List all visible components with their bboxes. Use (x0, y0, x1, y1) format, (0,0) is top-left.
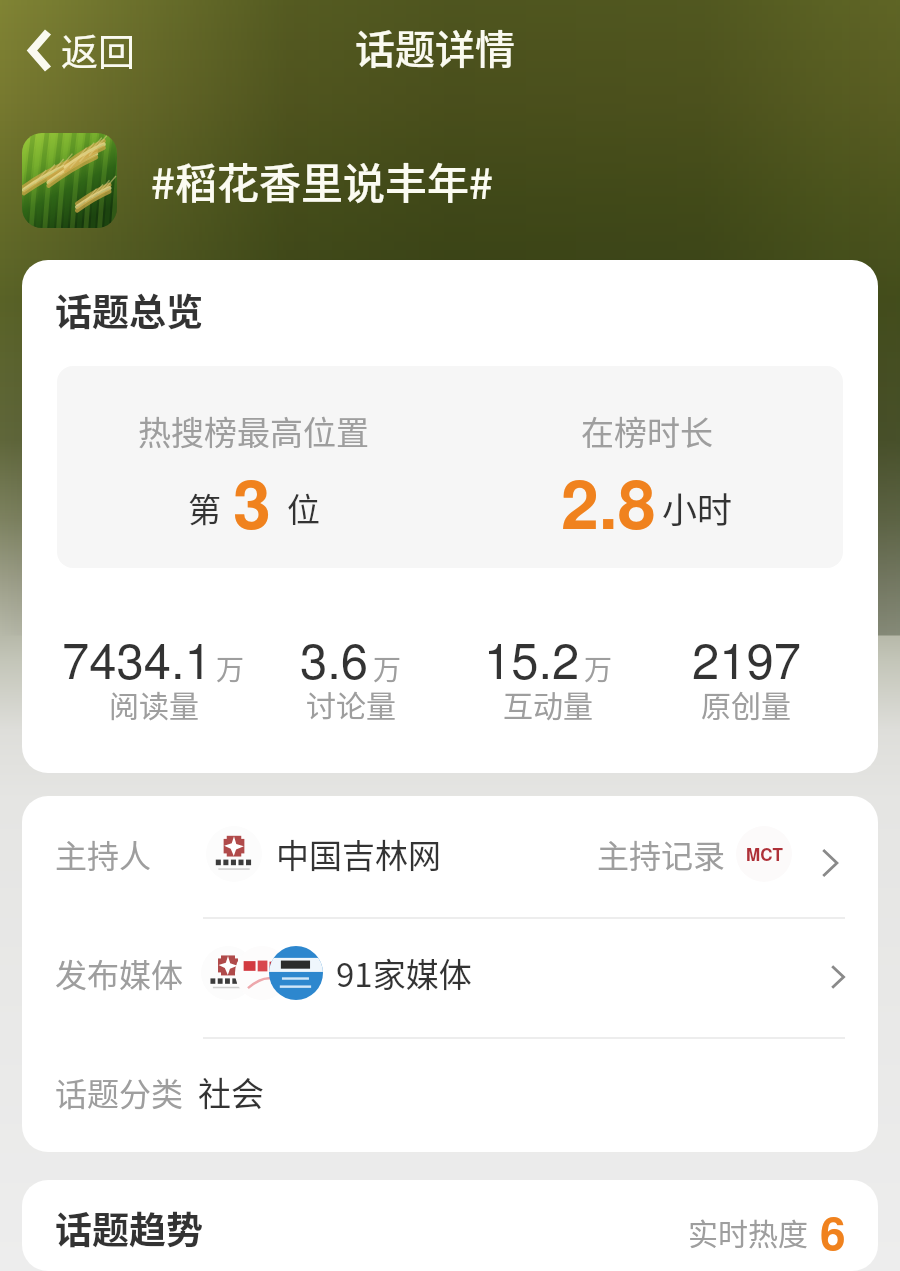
staticText: 2.8 (561, 452, 656, 549)
staticText: 热搜榜最高位置 (138, 407, 369, 455)
staticText: 原创量 (701, 682, 791, 725)
staticText: 话题详情 (355, 18, 515, 76)
staticText: 3.6 (300, 623, 369, 693)
staticText: 小时 (662, 482, 733, 533)
staticText: 阅读量 (109, 682, 199, 725)
button[interactable]: 主持人 (22, 796, 878, 917)
staticText: 话题趋势 (55, 1201, 203, 1255)
staticText: 位 (287, 484, 320, 532)
staticText: 实时热度 (688, 1210, 808, 1253)
staticText: 第 (188, 484, 221, 532)
staticText: 在榜时长 (581, 407, 713, 455)
other: More (822, 962, 852, 992)
staticText: 万 (373, 648, 402, 689)
staticText: 主持记录 (597, 831, 726, 877)
staticText: 7434.1 (62, 623, 212, 693)
staticText: 万 (216, 648, 245, 689)
staticText: 话题分类 (55, 1069, 184, 1115)
button[interactable]: 发布媒体 (22, 919, 878, 1037)
staticText: 讨论量 (306, 682, 396, 725)
staticText: 中国吉林网 (276, 830, 441, 878)
button[interactable]: 话题分类 (22, 1039, 878, 1152)
staticText: 6 (820, 1198, 846, 1264)
staticText: 91家媒体 (336, 949, 472, 997)
staticText: 2197 (692, 623, 801, 693)
button[interactable]: 返回 (20, 15, 143, 85)
staticText: 万 (584, 648, 613, 689)
staticText: 主持人 (55, 831, 152, 877)
staticText: 3 (233, 452, 271, 549)
other: More (811, 845, 847, 881)
staticText: 社会 (198, 1068, 264, 1116)
staticText: #稻花香里说丰年# (151, 150, 493, 211)
staticText: 返回 (61, 23, 135, 77)
staticText: MCT (746, 842, 783, 866)
staticText: 互动量 (503, 682, 593, 725)
staticText: 发布媒体 (55, 950, 184, 996)
staticText: 话题总览 (55, 283, 203, 337)
staticText: 15.2 (484, 623, 580, 693)
